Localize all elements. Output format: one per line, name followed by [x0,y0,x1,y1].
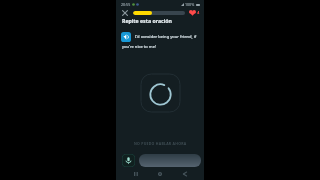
button[interactable] [139,154,201,167]
button[interactable]: Home [155,169,165,179]
button[interactable]: Back [180,169,190,179]
button[interactable]: Play audio [121,32,131,42]
staticText: NO PUEDO HABLAR AHORA [134,141,187,146]
staticText: I'd consider being your friend, if [135,34,197,40]
staticText: 4 [197,10,200,16]
staticText: Repite esta oración [122,17,172,24]
staticText: 100% [185,2,195,7]
staticText: 20:55 [121,2,131,7]
staticText: you're nice to me! [122,44,157,50]
button[interactable]: Close lesson [121,9,129,17]
button[interactable]: Microphone [122,154,135,167]
button[interactable]: Recent apps [131,169,141,179]
